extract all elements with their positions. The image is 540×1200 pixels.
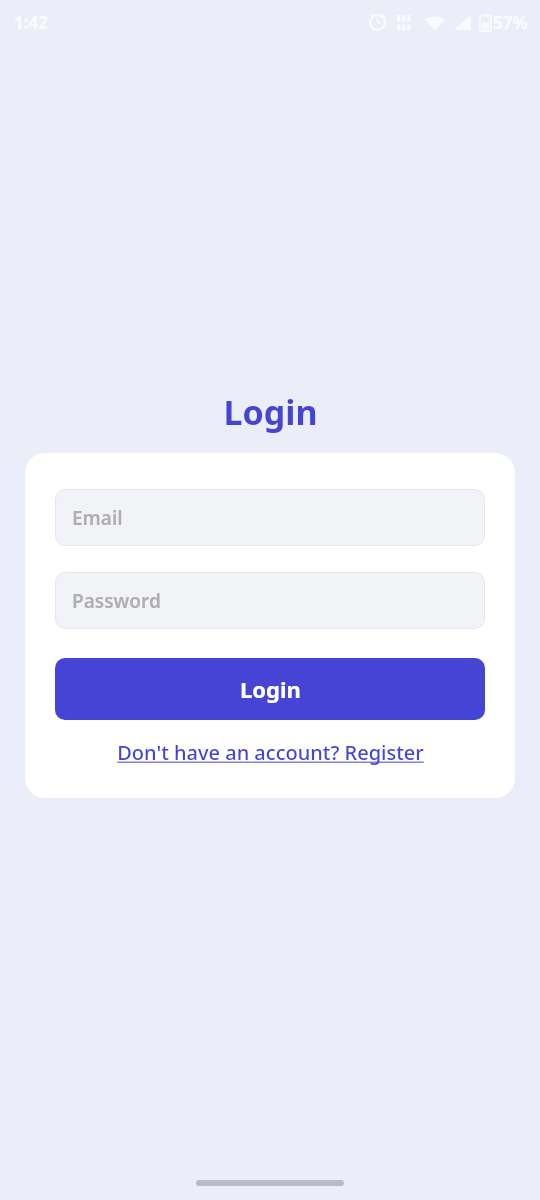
staticText: Login <box>240 674 301 704</box>
staticText: Email <box>72 505 123 531</box>
button[interactable]: Login <box>55 658 485 720</box>
button[interactable]: Email <box>55 489 485 546</box>
staticText: 1:42 <box>14 11 48 34</box>
button[interactable]: Password <box>55 572 485 629</box>
staticText: 57% <box>493 11 528 34</box>
button[interactable]: Don't have an account? Register <box>55 732 485 772</box>
staticText: Password <box>72 588 161 614</box>
staticText: Don't have an account? Register <box>117 739 424 766</box>
staticText: Login <box>223 389 318 435</box>
